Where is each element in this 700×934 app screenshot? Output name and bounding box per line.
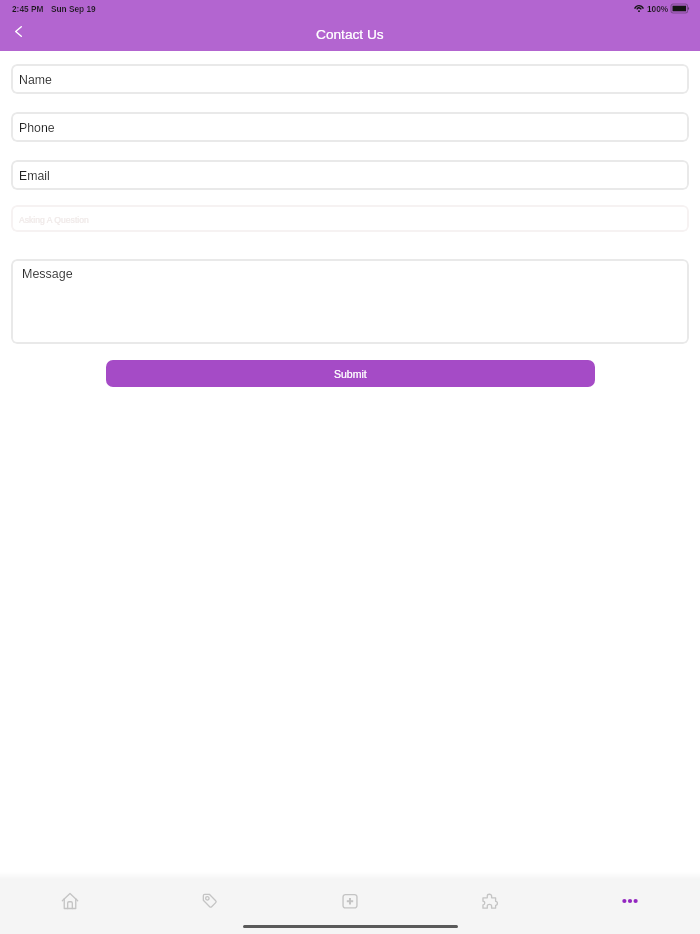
staticText: Email xyxy=(19,169,50,183)
button[interactable]: Email xyxy=(11,160,689,190)
button[interactable]: Extensions xyxy=(420,879,560,923)
button[interactable]: Add xyxy=(280,879,420,923)
staticText: Sun Sep 19 xyxy=(51,4,96,13)
button[interactable]: More xyxy=(560,879,700,923)
staticText: Phone xyxy=(19,121,55,135)
staticText: 2:45 PM xyxy=(12,4,44,13)
staticText: Contact Us xyxy=(316,27,384,42)
button[interactable]: Home xyxy=(0,879,140,923)
button[interactable]: Phone xyxy=(11,112,689,142)
button[interactable]: Tags xyxy=(140,879,280,923)
button[interactable]: Back xyxy=(2,15,34,47)
button[interactable]: Name xyxy=(11,64,689,94)
button[interactable]: Submit xyxy=(106,360,595,387)
button[interactable]: Message xyxy=(11,259,689,344)
staticText: 100% xyxy=(647,4,669,13)
staticText: Name xyxy=(19,73,52,87)
staticText: Submit xyxy=(334,368,367,380)
staticText: Asking A Question xyxy=(19,215,89,225)
staticText: Message xyxy=(22,267,73,281)
button[interactable]: Asking A Question xyxy=(11,205,689,232)
